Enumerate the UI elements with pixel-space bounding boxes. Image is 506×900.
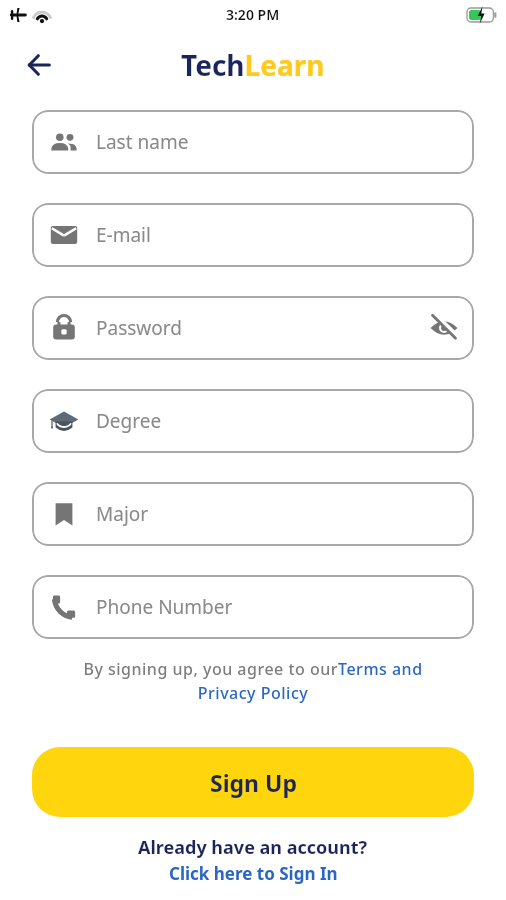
button[interactable]: Click here to Sign In bbox=[169, 862, 338, 885]
staticText: E-mail bbox=[96, 222, 151, 248]
staticText: Sign Up bbox=[210, 767, 297, 798]
button[interactable]: E-mail bbox=[32, 203, 474, 267]
staticText: Phone Number bbox=[96, 594, 233, 620]
button[interactable]: Degree bbox=[32, 389, 474, 453]
button[interactable]: Sign Up bbox=[32, 747, 474, 817]
staticText: Last name bbox=[96, 129, 189, 155]
button[interactable]: Last name bbox=[32, 110, 474, 174]
staticText: Password bbox=[96, 315, 182, 341]
button[interactable] bbox=[28, 54, 50, 76]
staticText: TechLearn bbox=[181, 46, 325, 84]
button[interactable]: Major bbox=[32, 482, 474, 546]
button[interactable]: Phone Number bbox=[32, 575, 474, 639]
staticText: 3:20 PM bbox=[226, 5, 280, 24]
button[interactable]: Password bbox=[32, 296, 474, 360]
button[interactable]: By signing up, you agree to ourTerms and… bbox=[0, 658, 506, 704]
staticText: Degree bbox=[96, 408, 162, 434]
staticText: Already have an account? bbox=[138, 835, 368, 860]
staticText: Major bbox=[96, 501, 149, 527]
